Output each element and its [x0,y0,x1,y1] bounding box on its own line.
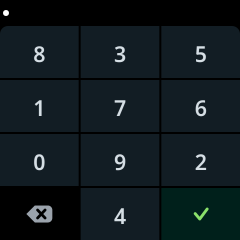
staticText: 9 [114,148,126,176]
button[interactable]: 0 [0,134,79,186]
button[interactable]: Confirm [161,188,240,240]
staticText: 1 [33,94,45,122]
staticText: 5 [195,40,207,68]
staticText: 8 [33,40,45,68]
staticText: 6 [195,94,207,122]
button[interactable]: 6 [161,80,240,132]
staticText: 3 [114,40,126,68]
button[interactable]: 4 [81,188,159,240]
button[interactable]: 1 [0,80,79,132]
button[interactable]: 8 [0,26,79,78]
button[interactable]: 5 [161,26,240,78]
staticText: 2 [195,148,207,176]
button[interactable]: Delete [0,188,79,240]
button[interactable]: 3 [81,26,159,78]
staticText: 4 [114,202,126,230]
button[interactable]: 9 [81,134,159,186]
staticText: 7 [114,94,126,122]
staticText: 0 [33,148,45,176]
button[interactable]: 7 [81,80,159,132]
button[interactable]: 2 [161,134,240,186]
